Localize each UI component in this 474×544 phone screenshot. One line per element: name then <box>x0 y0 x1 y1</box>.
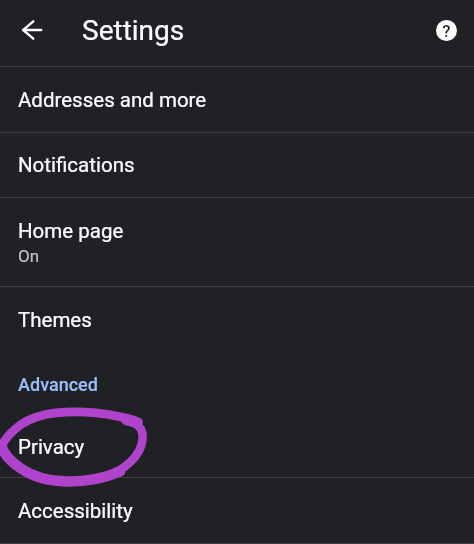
button[interactable]: Home page <box>0 198 474 286</box>
staticText: Addresses and more <box>18 88 207 112</box>
button[interactable]: Help <box>418 0 474 60</box>
button[interactable]: Addresses and more <box>0 67 474 132</box>
staticText: ? <box>442 21 451 41</box>
staticText: Advanced <box>18 374 98 395</box>
button[interactable]: Back <box>0 0 64 60</box>
staticText: On <box>18 246 40 266</box>
staticText: Notifications <box>18 153 135 177</box>
staticText: Privacy <box>18 435 85 459</box>
button[interactable]: Advanced <box>0 353 474 416</box>
staticText: Home page <box>18 219 124 243</box>
button[interactable]: Privacy <box>0 416 474 477</box>
staticText: Themes <box>18 308 92 332</box>
staticText: Settings <box>82 14 185 47</box>
staticText: Accessibility <box>18 499 133 523</box>
button[interactable]: Accessibility <box>0 478 474 543</box>
button[interactable]: Notifications <box>0 133 474 197</box>
button[interactable]: Themes <box>0 287 474 353</box>
